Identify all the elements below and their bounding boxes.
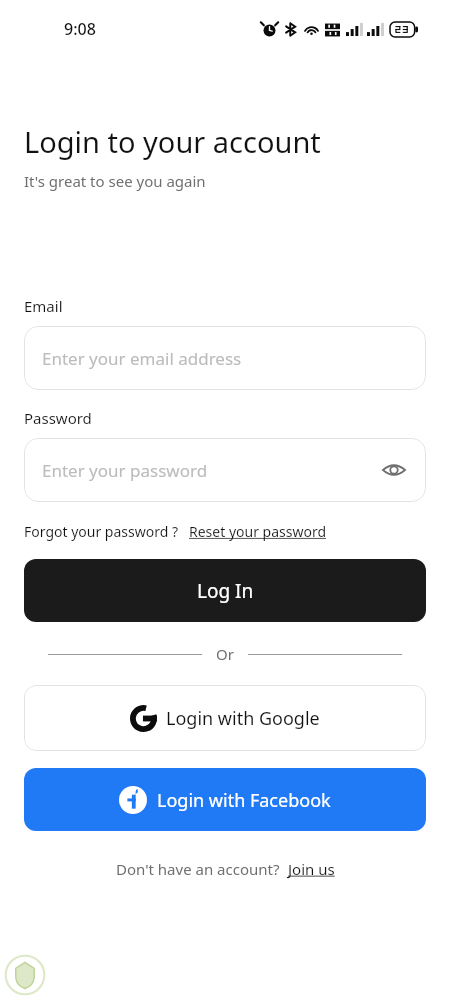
button[interactable]: Reset your password xyxy=(189,522,327,541)
staticText: Join us xyxy=(288,859,335,879)
staticText: Login with Google xyxy=(166,706,320,731)
staticText: Password xyxy=(24,408,92,428)
staticText: It's great to see you again xyxy=(24,171,206,191)
staticText: Login to your account xyxy=(24,122,321,161)
button[interactable]: Show password xyxy=(378,454,410,486)
button[interactable]: Login with Facebook xyxy=(24,768,426,831)
staticText: Enter your email address xyxy=(42,347,242,370)
staticText: Don't have an account? xyxy=(116,859,280,879)
button[interactable]: Enter your password xyxy=(24,438,426,502)
staticText: Email xyxy=(24,296,63,316)
staticText: Login with Facebook xyxy=(157,788,331,813)
staticText: Reset your password xyxy=(189,522,327,541)
staticText: Log In xyxy=(197,578,254,604)
button[interactable]: Join us xyxy=(288,859,335,879)
button[interactable]: Enter your email address xyxy=(24,326,426,390)
button[interactable]: Log In xyxy=(24,559,426,622)
button[interactable]: Login with Google xyxy=(24,685,426,751)
staticText: Forgot your password ? xyxy=(24,522,179,541)
staticText: Enter your password xyxy=(42,459,208,482)
staticText: Or xyxy=(216,644,234,664)
staticText: 9:08 xyxy=(64,18,96,40)
